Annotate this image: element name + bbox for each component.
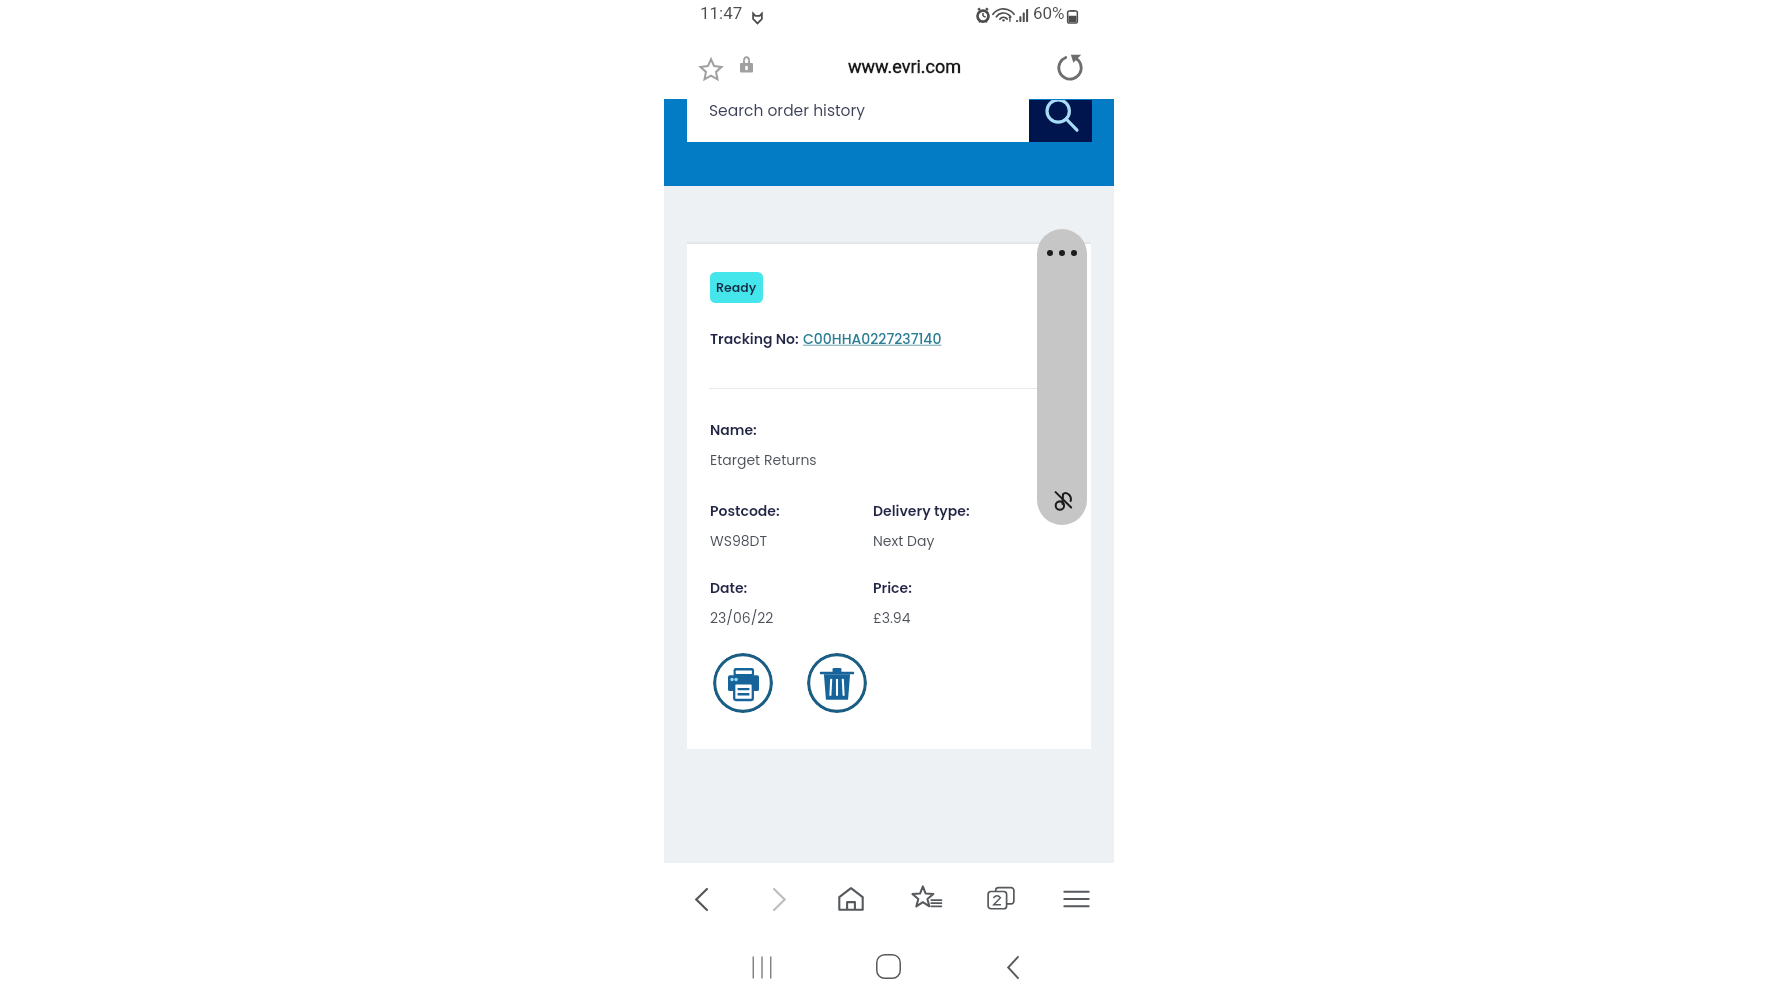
button[interactable]: www.evri.com — [830, 47, 980, 85]
staticText: Tracking No: — [710, 329, 803, 349]
staticText: Postcode: — [710, 501, 780, 521]
button[interactable]: Forward — [756, 880, 802, 918]
button[interactable]: Bookmark — [689, 48, 729, 88]
button[interactable]: Delete — [807, 653, 867, 713]
staticText: 11:47 — [700, 3, 743, 23]
button[interactable]: Menu — [1053, 880, 1099, 918]
staticText: 60% — [1033, 3, 1065, 23]
staticText: Search order history — [709, 100, 866, 122]
button[interactable]: Recents — [739, 948, 785, 986]
staticText: £3.94 — [873, 608, 911, 628]
staticText: Name: — [710, 420, 757, 440]
button[interactable]: Home — [828, 880, 874, 918]
staticText: Ready — [716, 279, 757, 296]
staticText: Delivery type: — [873, 501, 970, 521]
staticText: WS98DT — [710, 531, 768, 551]
button[interactable]: Reload — [1048, 45, 1088, 85]
button[interactable]: Secure connection — [729, 48, 759, 78]
staticText: Etarget Returns — [710, 450, 817, 470]
button[interactable]: Search — [1029, 100, 1092, 142]
button[interactable]: Tabs — [978, 879, 1024, 917]
button[interactable]: Back — [990, 948, 1036, 986]
button[interactable]: Search order history — [687, 99, 1029, 142]
button[interactable]: Assistant — [1037, 229, 1087, 525]
button[interactable]: Ready — [710, 272, 763, 303]
staticText: Date: — [710, 578, 748, 598]
button[interactable]: Ready — [687, 244, 1091, 749]
button[interactable]: Print label — [713, 653, 773, 713]
staticText: 23/06/22 — [710, 608, 774, 628]
button[interactable]: C00HHA0227237140 — [803, 329, 942, 349]
button[interactable]: Home — [865, 947, 911, 985]
staticText: Next Day — [873, 531, 935, 551]
button[interactable]: Back — [678, 880, 724, 918]
button[interactable]: Bookmarks — [904, 880, 950, 918]
staticText: Price: — [873, 578, 912, 598]
staticText: www.evri.com — [848, 56, 962, 77]
